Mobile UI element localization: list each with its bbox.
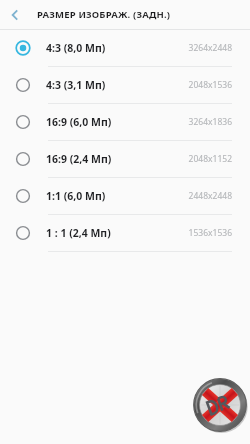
staticText: 1:1 (6,0 Мп): [46, 189, 106, 203]
staticText: РАЗМЕР ИЗОБРАЖ. (ЗАДН.): [37, 8, 171, 21]
staticText: 16:9 (6,0 Мп): [46, 115, 112, 129]
staticText: 3264x1836: [188, 116, 232, 128]
staticText: 2048x1536: [188, 79, 232, 91]
staticText: 4:3 (8,0 Мп): [46, 41, 106, 55]
button[interactable]: 16:9 (2,4 Мп): [0, 141, 250, 177]
staticText: 3264x2448: [188, 42, 232, 54]
button[interactable]: 4:3 (3,1 Мп): [0, 67, 250, 103]
button[interactable]: 1 : 1 (2,4 Мп): [0, 215, 250, 251]
button[interactable]: 4:3 (8,0 Мп): [0, 30, 250, 66]
staticText: 1 : 1 (2,4 Мп): [46, 226, 111, 240]
button[interactable]: Back: [0, 0, 30, 29]
staticText: 16:9 (2,4 Мп): [46, 152, 112, 166]
staticText: 1536x1536: [188, 227, 232, 239]
staticText: 4:3 (3,1 Мп): [46, 78, 106, 92]
button[interactable]: 16:9 (6,0 Мп): [0, 104, 250, 140]
staticText: 2448x2448: [188, 190, 232, 202]
staticText: 2048x1152: [188, 153, 232, 165]
button[interactable]: 1:1 (6,0 Мп): [0, 178, 250, 214]
